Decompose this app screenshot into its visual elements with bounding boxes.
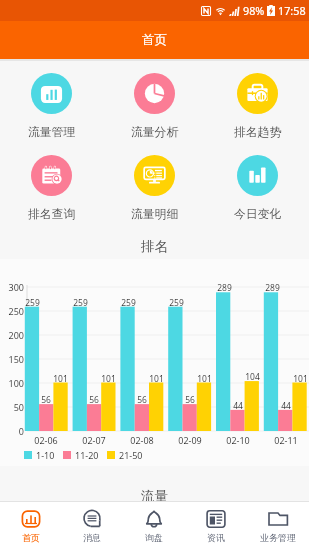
staticText: 259 — [25, 297, 40, 309]
button[interactable]: 首页 — [0, 505, 61, 547]
button[interactable]: 业务管理 — [247, 505, 309, 547]
staticText: 101 — [149, 373, 164, 385]
button[interactable]: 排名趋势 — [206, 70, 309, 143]
staticText: 0 — [18, 425, 24, 437]
button[interactable]: 流量分析 — [103, 70, 206, 143]
staticText: 今日变化 — [234, 207, 282, 222]
staticText: 首页 — [142, 32, 167, 48]
button[interactable]: 流量管理 — [0, 70, 103, 143]
staticText: 17:58 — [278, 3, 306, 18]
staticText: 11-20 — [75, 449, 99, 461]
staticText: 259 — [121, 297, 136, 309]
staticText: 101 — [101, 373, 116, 385]
button[interactable]: 今日变化 — [206, 152, 309, 225]
staticText: 101 — [53, 373, 68, 385]
staticText: 流量管理 — [28, 125, 76, 140]
staticText: 56 — [137, 394, 147, 406]
staticText: 259 — [73, 297, 88, 309]
staticText: 50 — [13, 401, 24, 413]
staticText: 98% — [243, 3, 265, 18]
staticText: 排名 — [141, 238, 168, 255]
staticText: 300 — [8, 281, 24, 293]
staticText: 02-06 — [34, 434, 58, 446]
staticText: 44 — [233, 400, 243, 412]
staticText: 56 — [185, 394, 195, 406]
staticText: 02-09 — [178, 434, 202, 446]
staticText: 流量明细 — [131, 207, 179, 222]
staticText: 询盘 — [145, 532, 163, 543]
staticText: 289 — [217, 282, 232, 294]
staticText: 02-08 — [130, 434, 154, 446]
button[interactable]: 资讯 — [185, 505, 247, 547]
staticText: 56 — [41, 394, 51, 406]
button[interactable]: 询盘 — [123, 505, 185, 547]
staticText: 02-11 — [274, 434, 298, 446]
button[interactable]: 首页 — [0, 21, 309, 59]
staticText: 资讯 — [207, 532, 225, 543]
staticText: 250 — [8, 305, 24, 317]
staticText: 100 — [8, 377, 24, 389]
staticText: 150 — [8, 353, 24, 365]
staticText: 44 — [281, 400, 291, 412]
staticText: 流量分析 — [131, 125, 179, 140]
staticText: 流量 — [141, 488, 168, 505]
staticText: 业务管理 — [260, 532, 296, 543]
staticText: 排名查询 — [28, 207, 76, 222]
staticText: 消息 — [83, 532, 101, 543]
button[interactable]: 消息 — [61, 505, 123, 547]
staticText: 289 — [265, 282, 280, 294]
staticText: 02-07 — [82, 434, 106, 446]
staticText: 101 — [293, 373, 308, 385]
button[interactable]: 流量明细 — [103, 152, 206, 225]
button[interactable]: 排名查询 — [0, 152, 103, 225]
staticText: 02-10 — [226, 434, 250, 446]
staticText: 21-50 — [119, 449, 143, 461]
staticText: 259 — [169, 297, 184, 309]
staticText: 200 — [8, 329, 24, 341]
staticText: 56 — [89, 394, 99, 406]
staticText: 排名趋势 — [234, 125, 282, 140]
staticText: 首页 — [22, 532, 40, 543]
staticText: 104 — [245, 371, 260, 383]
staticText: 101 — [197, 373, 212, 385]
staticText: 1-10 — [36, 449, 55, 461]
